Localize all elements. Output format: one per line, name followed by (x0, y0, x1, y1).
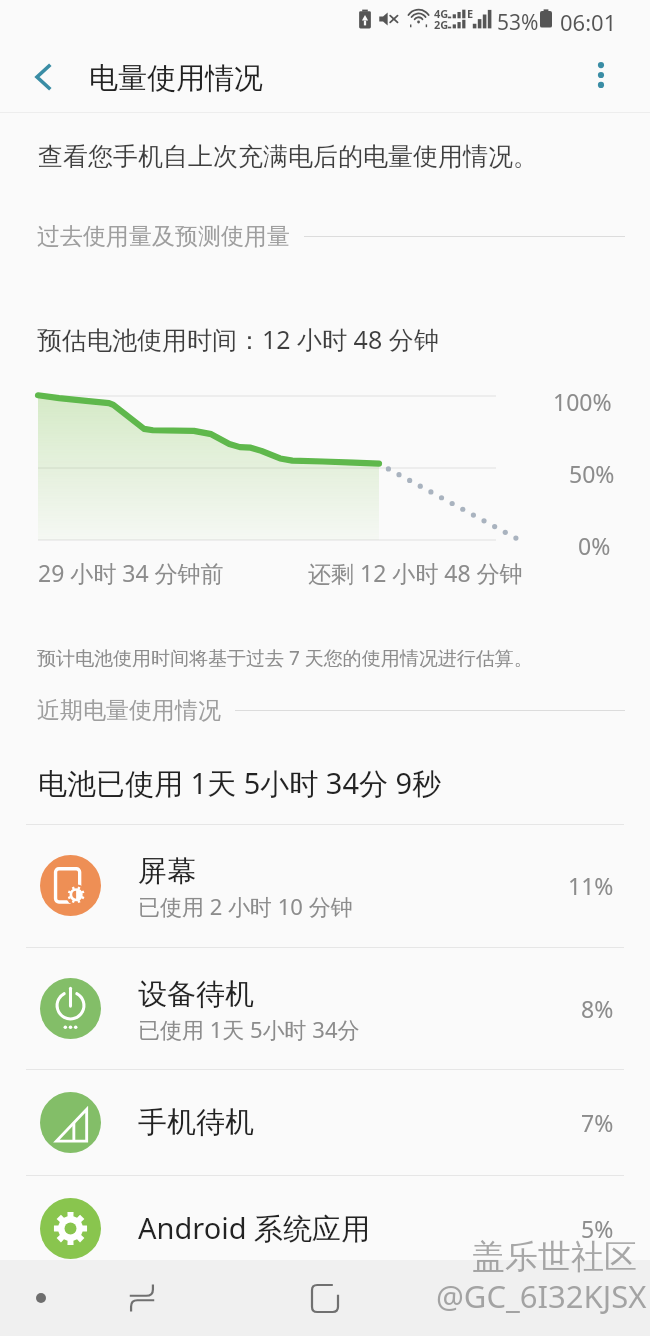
staticText: 8% (581, 993, 614, 1024)
staticText: 50% (569, 458, 615, 489)
staticText: 电池已使用 1天 5小时 34分 9秒 (38, 763, 442, 803)
button[interactable]: 屏幕 (0, 824, 650, 947)
staticText: 06:01 (560, 7, 617, 37)
staticText: 屏幕 (138, 853, 196, 890)
staticText: 5% (581, 1213, 614, 1244)
staticText: 53% (497, 8, 539, 37)
staticText: 预估电池使用时间：12 小时 48 分钟 (37, 322, 439, 356)
staticText: 4G (434, 6, 449, 21)
staticText: 查看您手机自上次充满电后的电量使用情况。 (38, 141, 538, 172)
button[interactable]: Back (94, 1260, 190, 1336)
button[interactable]: Recent apps (0, 1260, 81, 1336)
staticText: E (467, 6, 474, 21)
staticText: @GC_6I32KJSX (436, 1275, 647, 1317)
button[interactable]: 设备待机 (0, 947, 650, 1069)
staticText: 预计电池使用时间将基于过去 7 天您的使用情况进行估算。 (37, 645, 533, 671)
staticText: 近期电量使用情况 (37, 696, 221, 725)
staticText: 2G (434, 17, 449, 32)
staticText: 100% (553, 386, 612, 417)
staticText: 11% (568, 870, 614, 901)
staticText: 已使用 1天 5小时 34分 (138, 1014, 360, 1044)
button[interactable]: Home (277, 1260, 373, 1336)
button[interactable]: Android 系统应用 (0, 1175, 650, 1281)
button[interactable]: More options (572, 46, 629, 103)
button[interactable]: Back (14, 48, 72, 106)
staticText: 手机待机 (138, 1104, 254, 1141)
staticText: 已使用 2 小时 10 分钟 (138, 891, 353, 921)
staticText: 盖乐世社区 (472, 1236, 637, 1278)
button[interactable]: 手机待机 (0, 1069, 650, 1175)
staticText: 电量使用情况 (89, 60, 263, 97)
staticText: 29 小时 34 分钟前 (38, 557, 224, 588)
staticText: 设备待机 (138, 976, 254, 1013)
staticText: 还剩 12 小时 48 分钟 (308, 557, 523, 588)
staticText: 7% (581, 1107, 614, 1138)
staticText: 0% (578, 530, 611, 561)
staticText: Android 系统应用 (138, 1208, 371, 1248)
staticText: 过去使用量及预测使用量 (37, 222, 290, 251)
